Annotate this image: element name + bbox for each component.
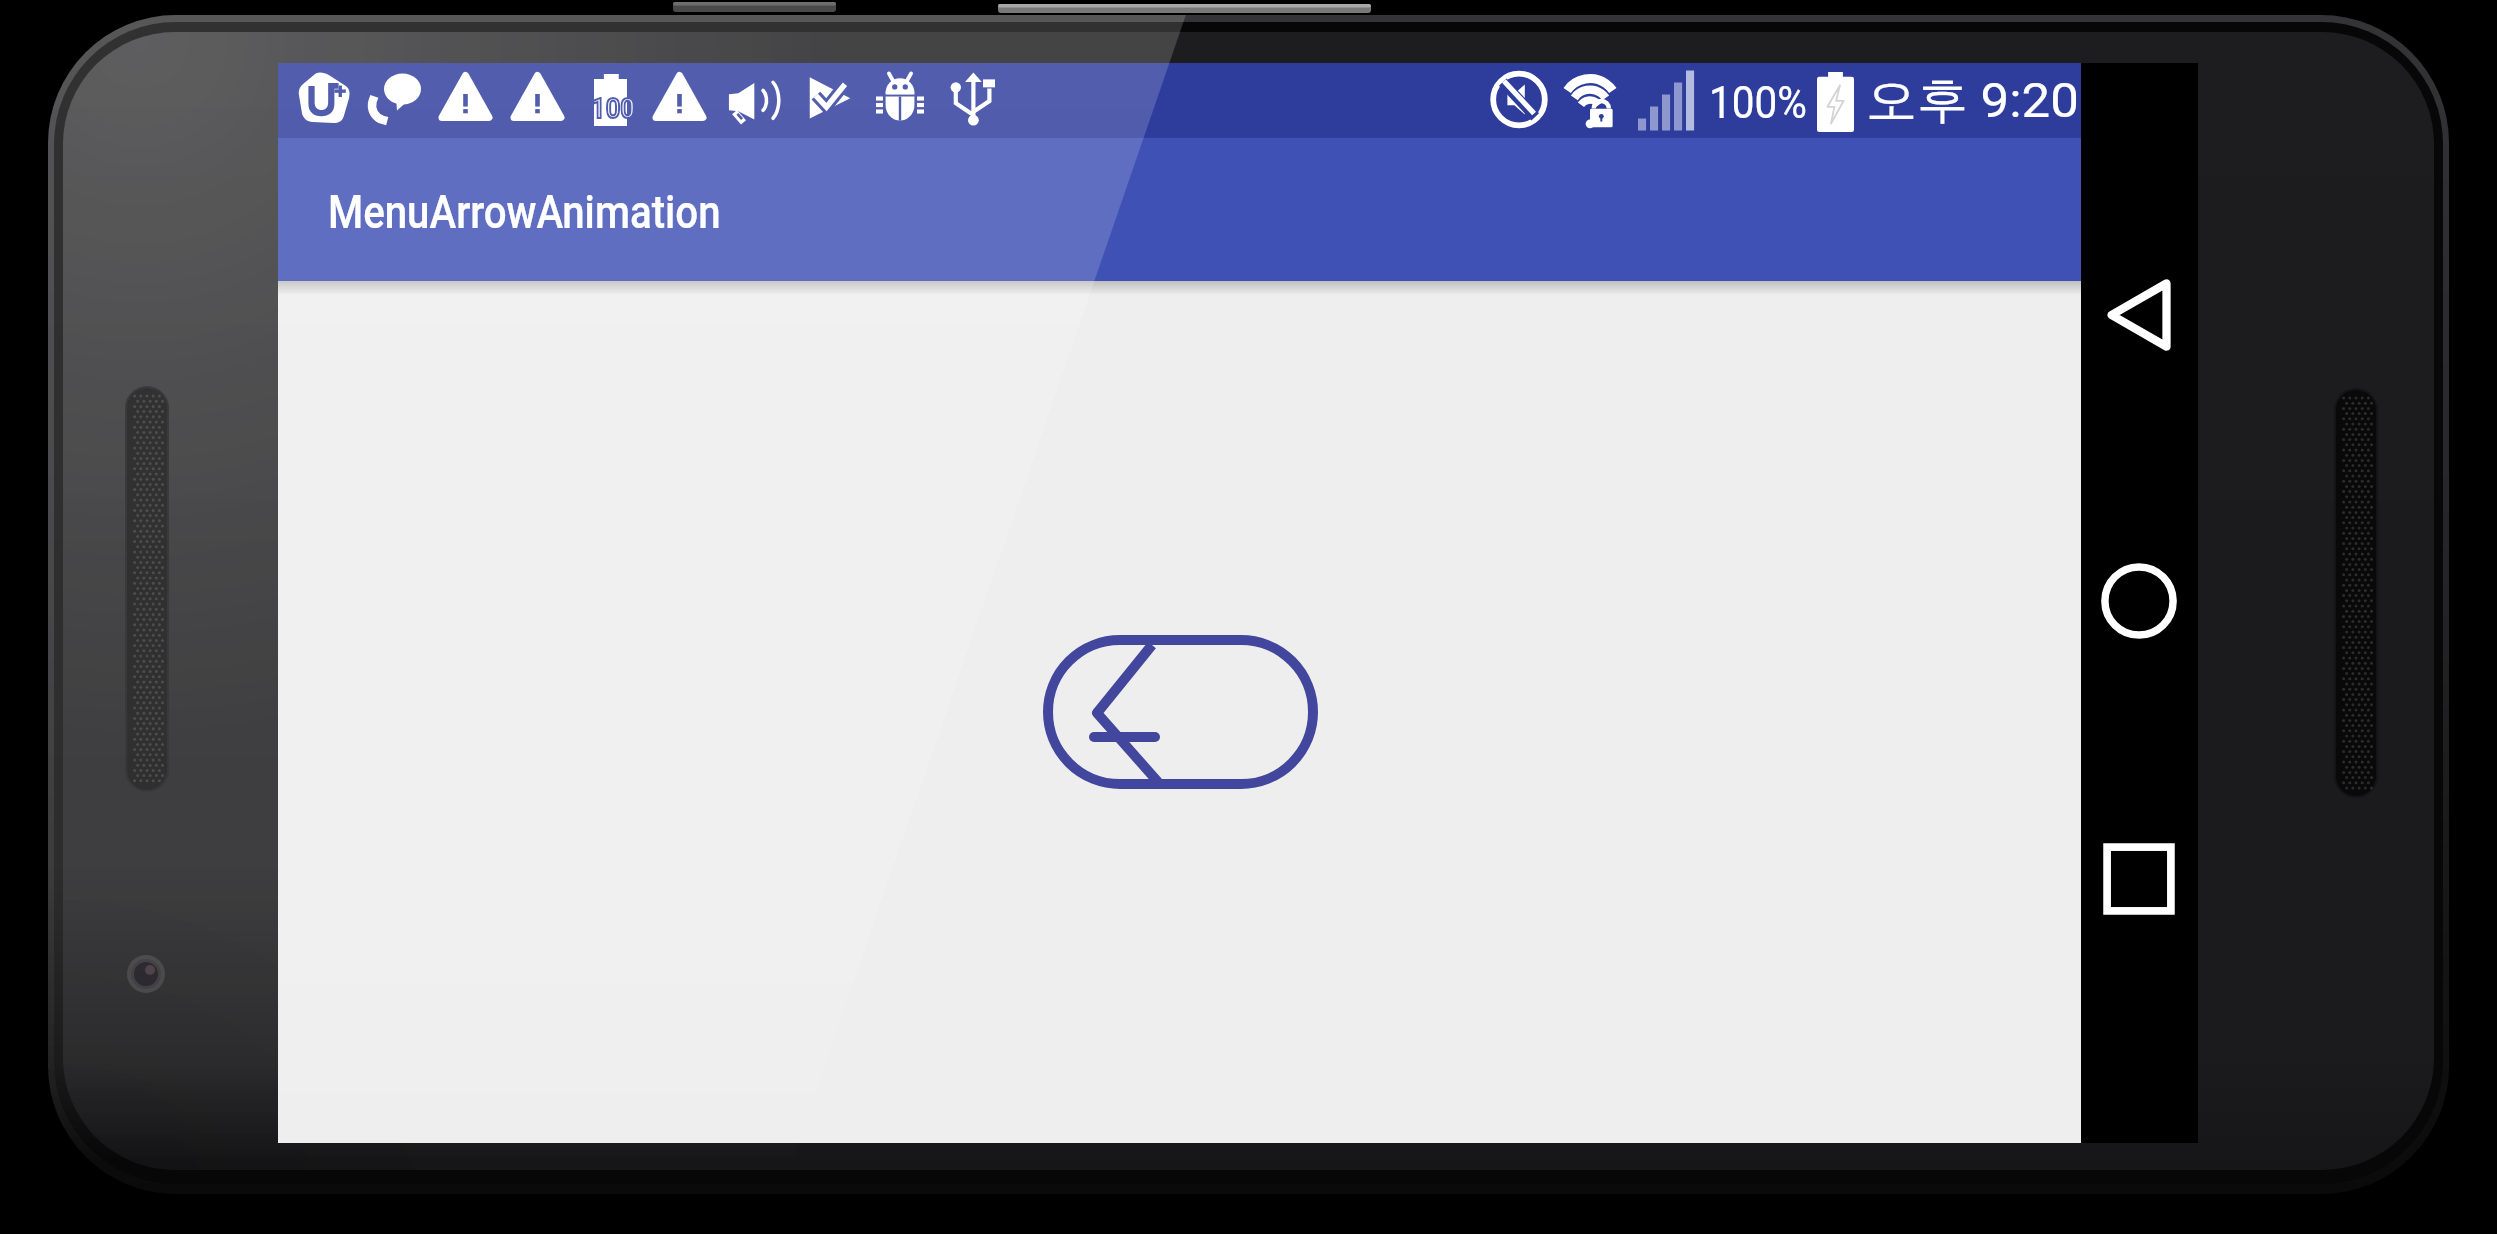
staticText: MenuArrowAnimation: [328, 184, 721, 239]
button[interactable]: Home: [2084, 546, 2194, 656]
button[interactable]: Back: [2084, 260, 2194, 370]
button[interactable]: Recent apps: [2084, 824, 2194, 934]
staticText: 100: [591, 92, 635, 125]
staticText: 100%: [1709, 77, 1807, 129]
button[interactable]: MenuArrowAnimation: [278, 138, 2081, 281]
staticText: 오후 9:20: [1866, 70, 2079, 132]
staticText: 100: [591, 92, 635, 125]
